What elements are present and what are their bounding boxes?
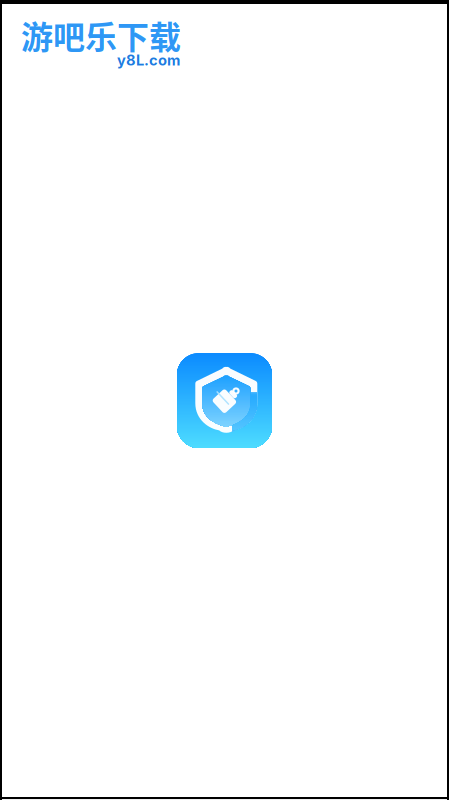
staticText: 游吧乐下载: [21, 12, 181, 58]
staticText: y8L.com: [117, 51, 180, 69]
